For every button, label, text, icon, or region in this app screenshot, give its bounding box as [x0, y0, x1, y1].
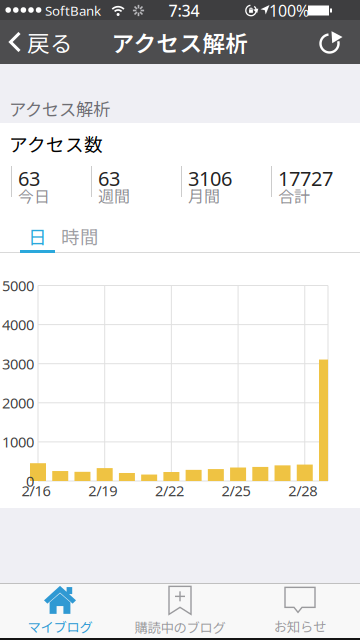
- staticText: 5000: [2, 276, 34, 295]
- staticText: 100%: [269, 0, 309, 21]
- staticText: 2/22: [155, 481, 184, 500]
- staticText: アクセス解析: [9, 96, 110, 121]
- staticText: アクセス数: [9, 130, 103, 157]
- button[interactable]: 日: [20, 222, 55, 250]
- button[interactable]: 戻る: [0, 20, 73, 64]
- staticText: 3000: [2, 354, 34, 373]
- staticText: 今日: [18, 184, 50, 207]
- staticText: マイブログ: [27, 617, 92, 636]
- staticText: 日: [28, 222, 47, 249]
- staticText: 2/25: [222, 481, 251, 500]
- staticText: 1000: [2, 432, 34, 452]
- staticText: 戻る: [27, 26, 73, 58]
- staticText: 月間: [188, 184, 220, 207]
- staticText: 週間: [98, 184, 130, 207]
- staticText: 63: [98, 165, 120, 192]
- staticText: 2/16: [21, 481, 50, 500]
- staticText: 3106: [188, 165, 232, 192]
- button[interactable]: 購読中のブログ: [120, 585, 240, 637]
- staticText: 7:34: [168, 0, 199, 21]
- staticText: 購読中のブログ: [134, 617, 225, 637]
- staticText: 0: [26, 471, 34, 491]
- staticText: お知らせ: [274, 616, 326, 636]
- staticText: アクセス解析: [111, 26, 248, 58]
- staticText: 63: [18, 165, 40, 192]
- staticText: 2/19: [88, 481, 117, 500]
- staticText: SoftBank: [45, 2, 101, 19]
- staticText: 4000: [2, 315, 34, 334]
- button[interactable]: Refresh: [309, 20, 353, 64]
- staticText: 合計: [278, 184, 310, 207]
- staticText: 17727: [278, 165, 333, 192]
- staticText: 2/28: [288, 481, 317, 500]
- staticText: 2000: [2, 393, 34, 413]
- staticText: 時間: [61, 222, 99, 249]
- button[interactable]: お知らせ: [240, 585, 360, 637]
- button[interactable]: 時間: [60, 222, 100, 250]
- button[interactable]: マイブログ: [0, 585, 120, 637]
